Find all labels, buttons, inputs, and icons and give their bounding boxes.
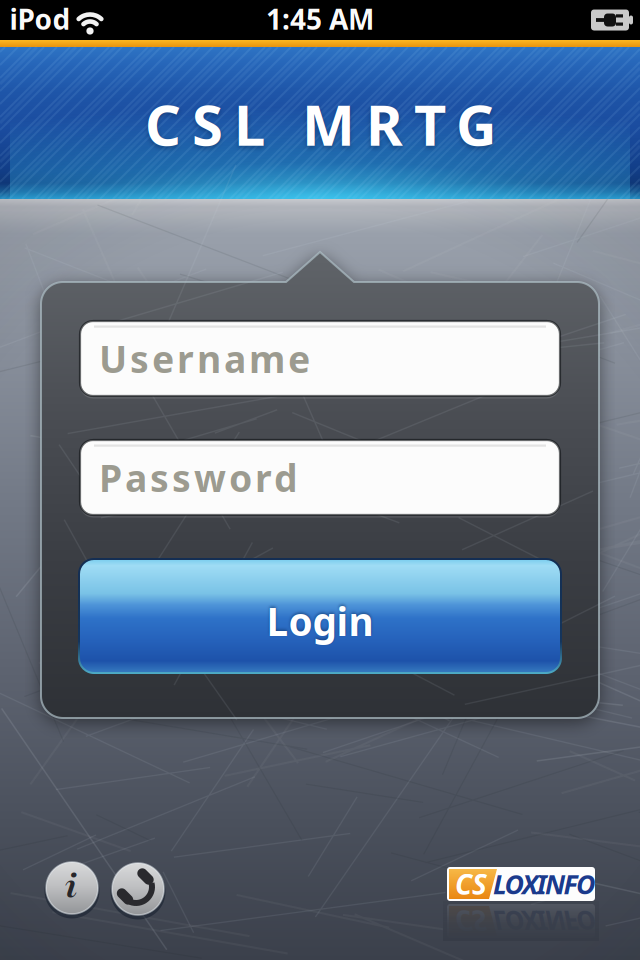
textField[interactable]: Password: [99, 453, 560, 502]
textField[interactable]: Username: [99, 334, 560, 383]
staticText: 1:45 AM: [266, 0, 374, 38]
staticText: i: [64, 862, 77, 910]
staticText: Password: [99, 453, 298, 502]
staticText: Login: [266, 595, 373, 647]
button[interactable]: Info: [43, 859, 101, 917]
staticText: Username: [99, 334, 310, 383]
button[interactable]: Call: [109, 860, 167, 918]
button[interactable]: CSLOXINFO: [447, 867, 595, 901]
staticText: LOXINFO: [493, 866, 595, 902]
staticText: CS: [455, 865, 487, 903]
button[interactable]: Login: [78, 558, 562, 674]
staticText: CSL MRTG: [145, 87, 497, 161]
staticText: iPod: [9, 0, 70, 38]
